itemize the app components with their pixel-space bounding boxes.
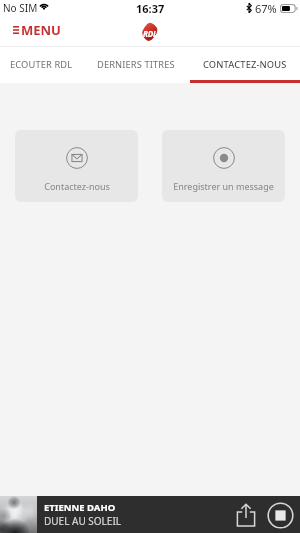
staticText: DUEL AU SOLEIL xyxy=(44,514,122,528)
staticText: 16:37 xyxy=(136,1,165,16)
staticText: DERNIERS TITRES xyxy=(97,58,175,71)
staticText: CONTACTEZ-NOUS xyxy=(203,58,287,71)
button[interactable]: Share xyxy=(230,499,262,531)
button[interactable]: Stop xyxy=(264,497,297,533)
staticText: 67% xyxy=(255,1,277,16)
staticText: No SIM xyxy=(3,1,38,15)
button[interactable]: Contactez-nous xyxy=(15,130,138,202)
staticText: MENU xyxy=(21,21,61,39)
button[interactable]: Menu xyxy=(13,21,61,39)
staticText: Contactez-nous xyxy=(44,180,110,192)
button[interactable]: DERNIERS TITRES xyxy=(82,47,190,83)
staticText: RDL xyxy=(143,28,157,39)
button[interactable]: Enregistrer un message xyxy=(162,130,285,202)
staticText: ETIENNE DAHO xyxy=(44,501,116,514)
button[interactable]: ECOUTER RDL xyxy=(0,47,82,83)
button[interactable]: CONTACTEZ-NOUS xyxy=(190,47,300,83)
staticText: Enregistrer un message xyxy=(173,180,274,192)
staticText: ECOUTER RDL xyxy=(10,58,73,71)
